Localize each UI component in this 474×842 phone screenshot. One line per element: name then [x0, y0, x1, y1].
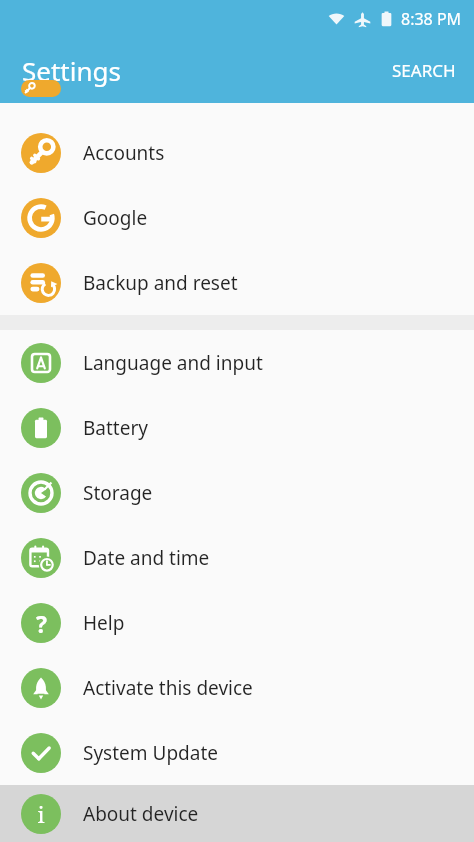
button[interactable]: SEARCH — [374, 47, 474, 94]
staticText: Accounts — [83, 140, 165, 166]
button[interactable]: Backup and reset — [0, 250, 474, 315]
button[interactable]: ? — [0, 590, 474, 655]
staticText: Backup and reset — [83, 270, 238, 296]
staticText: About device — [83, 801, 199, 827]
staticText: 8:38 PM — [401, 8, 462, 30]
button[interactable]: Date and time — [0, 525, 474, 590]
staticText: Storage — [83, 480, 153, 506]
staticText: Google — [83, 205, 148, 231]
button[interactable]: System Update — [0, 720, 474, 785]
staticText: SEARCH — [392, 59, 456, 82]
button[interactable]: i — [0, 785, 474, 842]
staticText: Activate this device — [83, 675, 253, 701]
staticText: ? — [36, 608, 47, 639]
button[interactable]: Language and input — [0, 330, 474, 395]
staticText: Language and input — [83, 350, 263, 376]
staticText: Date and time — [83, 545, 210, 571]
staticText: Settings — [22, 53, 121, 88]
staticText: i — [37, 799, 45, 829]
button[interactable]: Storage — [0, 460, 474, 525]
button[interactable]: Google — [0, 185, 474, 250]
button[interactable]: Battery — [0, 395, 474, 460]
staticText: System Update — [83, 740, 218, 766]
button[interactable]: Accounts — [0, 120, 474, 185]
staticText: Battery — [83, 415, 148, 441]
button[interactable]: Activate this device — [0, 655, 474, 720]
staticText: Help — [83, 610, 125, 636]
